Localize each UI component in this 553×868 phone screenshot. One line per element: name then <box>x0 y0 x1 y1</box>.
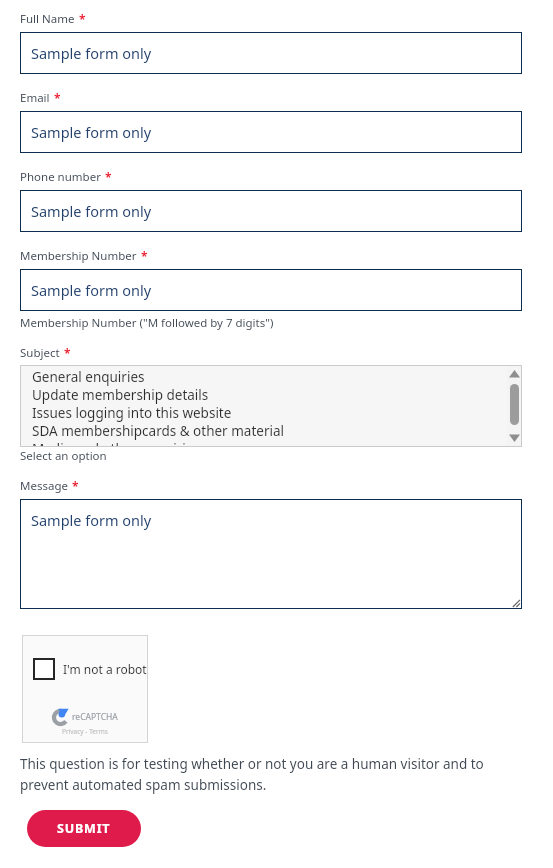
staticText: Issues logging into this website <box>32 404 232 422</box>
staticText: Phone number <box>20 169 101 185</box>
staticText: * <box>79 11 86 27</box>
staticText: General enquiries <box>32 368 145 386</box>
staticText: * <box>105 169 112 185</box>
staticText: Full Name <box>20 11 75 27</box>
staticText: Membership Number <box>20 248 137 264</box>
button[interactable]: Sample form only <box>20 499 522 609</box>
staticText: Sample form only <box>31 280 152 300</box>
button[interactable]: Sample form only <box>20 111 522 153</box>
staticText: * <box>64 345 71 361</box>
button[interactable]: Sample form only <box>20 32 522 74</box>
staticText: Select an option <box>20 448 107 464</box>
staticText: This question is for testing whether or … <box>20 755 522 794</box>
staticText: Email <box>20 90 50 106</box>
staticText: I'm not a robot <box>63 661 147 677</box>
staticText: reCAPTCHA <box>72 711 118 723</box>
staticText: SDA membershipcards & other material <box>32 422 284 440</box>
staticText: Sample form only <box>31 43 152 63</box>
staticText: Update membership details <box>32 386 209 404</box>
button[interactable]: General enquiries <box>20 365 522 447</box>
staticText: Sample form only <box>31 201 152 221</box>
staticText: * <box>72 478 79 494</box>
button[interactable]: SUBMIT <box>27 810 141 847</box>
staticText: Media and other enquiries <box>32 440 200 447</box>
button[interactable]: Sample form only <box>20 269 522 311</box>
staticText: Membership Number ("M followed by 7 digi… <box>20 315 274 331</box>
button[interactable]: I'm not a robot reCAPTCHA <box>22 635 148 743</box>
staticText: Sample form only <box>31 122 152 142</box>
staticText: Sample form only <box>31 510 152 530</box>
staticText: Subject <box>20 345 60 361</box>
staticText: SUBMIT <box>57 820 111 837</box>
staticText: Message <box>20 478 68 494</box>
staticText: Privacy - Terms <box>62 727 108 736</box>
staticText: * <box>141 248 148 264</box>
staticText: * <box>54 90 61 106</box>
button[interactable]: Sample form only <box>20 190 522 232</box>
